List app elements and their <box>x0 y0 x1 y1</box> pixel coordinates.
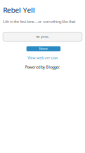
staticText: Life in the fast lane....or something li… <box>3 19 75 24</box>
button[interactable]: View web version <box>0 55 85 60</box>
staticText: No posts. <box>36 35 49 38</box>
staticText: Rebel Yell <box>3 5 35 15</box>
button[interactable]: Powered by Blogger. <box>0 64 85 70</box>
staticText: Powered by Blogger. <box>25 64 60 70</box>
staticText: Home <box>39 47 48 51</box>
button[interactable]: Home <box>26 46 60 51</box>
staticText: View web version <box>27 55 57 60</box>
